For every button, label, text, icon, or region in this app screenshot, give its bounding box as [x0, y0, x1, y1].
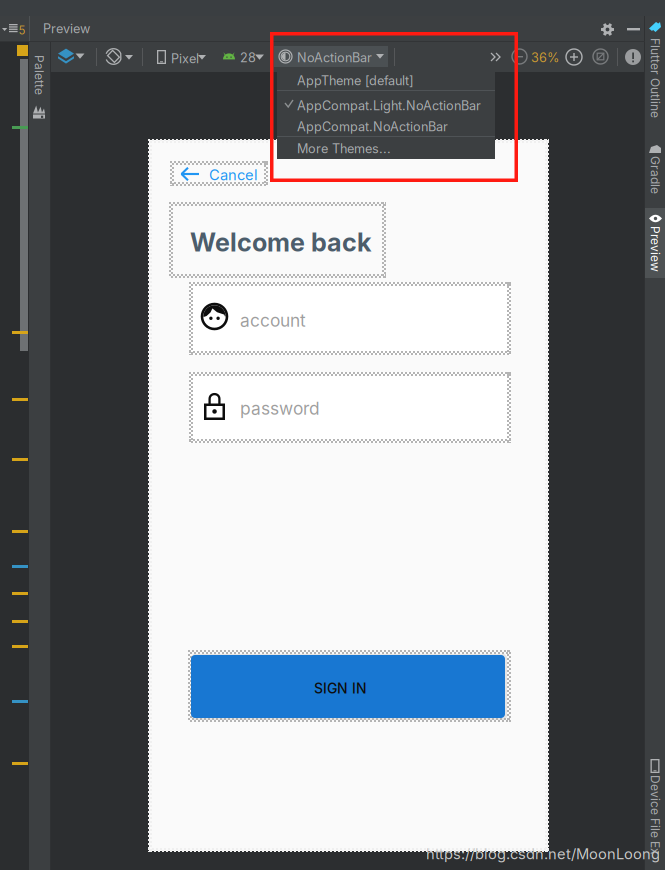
- button[interactable]: Issues: [625, 49, 641, 65]
- staticText: AppCompat.NoActionBar: [297, 119, 448, 134]
- button[interactable]: Pixel: [154, 46, 212, 68]
- staticText: https://blog.csdn.net/MoonLoong: [426, 845, 660, 863]
- staticText: Preview: [43, 21, 90, 36]
- staticText: 5: [19, 23, 26, 37]
- button[interactable]: Settings: [601, 23, 614, 36]
- button[interactable]: Collapse: [0, 16, 29, 42]
- staticText: Welcome back: [190, 227, 371, 258]
- staticText: 36%: [531, 50, 559, 65]
- button[interactable]: Cancel: [170, 161, 268, 186]
- button[interactable]: Gradle: [645, 140, 665, 202]
- staticText: account: [240, 310, 306, 331]
- button[interactable]: NoActionBar: [274, 46, 388, 67]
- button[interactable]: account: [189, 282, 511, 355]
- button[interactable]: Palette: [29, 54, 49, 122]
- staticText: Cancel: [209, 166, 258, 184]
- staticText: Device File Ex: [610, 813, 665, 827]
- button[interactable]: More Themes...: [277, 138, 495, 159]
- button[interactable]: AppTheme [default]: [277, 68, 495, 90]
- button[interactable]: password: [189, 372, 511, 443]
- button[interactable]: SIGN IN: [188, 650, 511, 722]
- staticText: Flutter Outline: [613, 73, 665, 87]
- staticText: AppCompat.Light.NoActionBar: [297, 98, 481, 113]
- button[interactable]: AppCompat.Light.NoActionBar: [277, 94, 495, 115]
- button[interactable]: Preview: [645, 208, 665, 278]
- staticText: Preview: [632, 242, 665, 256]
- staticText: password: [240, 398, 320, 419]
- staticText: 28: [240, 50, 256, 65]
- button[interactable]: Zoom out: [512, 49, 527, 64]
- staticText: SIGN IN: [314, 680, 367, 697]
- button[interactable]: Surface: [56, 45, 88, 67]
- staticText: AppTheme [default]: [297, 73, 414, 88]
- button[interactable]: Flutter Outline: [645, 18, 665, 122]
- button[interactable]: 28: [223, 46, 267, 68]
- button[interactable]: Orientation: [103, 46, 139, 68]
- staticText: Gradle: [635, 169, 665, 183]
- button[interactable]: More: [488, 49, 504, 65]
- staticText: Palette: [18, 69, 58, 83]
- button[interactable]: Preview: [36, 16, 116, 42]
- staticText: More Themes...: [297, 141, 391, 156]
- staticText: NoActionBar: [297, 50, 372, 65]
- button[interactable]: Minimize: [627, 23, 641, 35]
- button[interactable]: Device File Ex: [645, 755, 665, 867]
- button[interactable]: Zoom in: [566, 49, 582, 65]
- button[interactable]: AppCompat.NoActionBar: [277, 115, 495, 136]
- button[interactable]: Zoom to fit: [593, 49, 608, 64]
- staticText: Pixel: [171, 51, 199, 66]
